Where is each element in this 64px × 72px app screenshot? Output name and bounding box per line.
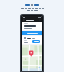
button[interactable]: Back xyxy=(22,18,42,22)
button[interactable]: Date xyxy=(24,37,40,39)
button[interactable]: Back xyxy=(23,19,25,21)
button[interactable]: Map xyxy=(22,45,42,71)
button[interactable]: My location xyxy=(38,66,41,69)
button[interactable] xyxy=(32,40,40,43)
button[interactable] xyxy=(22,22,42,30)
button[interactable] xyxy=(22,31,42,35)
